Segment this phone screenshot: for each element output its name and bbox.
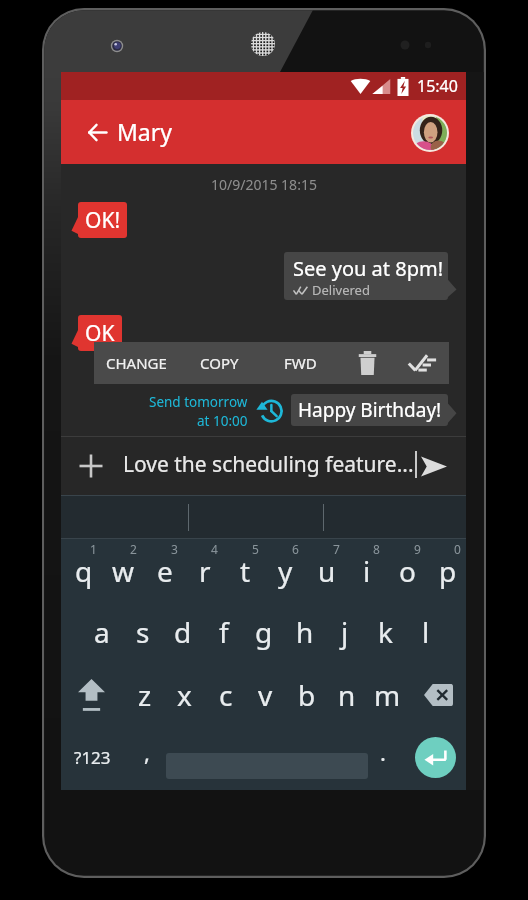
button[interactable]: Done xyxy=(394,342,449,384)
button[interactable]: h xyxy=(284,603,325,661)
button[interactable]: 5 xyxy=(225,536,266,594)
staticText: x xyxy=(177,676,192,714)
button[interactable]: Add attachment xyxy=(65,440,117,492)
button[interactable]: v xyxy=(245,664,286,726)
button[interactable]: . xyxy=(364,728,402,786)
staticText: See you at 8pm! xyxy=(293,255,444,282)
button[interactable]: l xyxy=(405,603,446,661)
staticText: z xyxy=(138,676,152,714)
button[interactable]: k xyxy=(365,603,406,661)
button[interactable]: c xyxy=(205,664,246,726)
staticText: p xyxy=(439,552,457,590)
staticText: y xyxy=(278,552,293,590)
staticText: 6 xyxy=(292,541,299,557)
button[interactable]: 4 xyxy=(184,536,225,594)
button[interactable]: b xyxy=(286,664,327,726)
staticText: a xyxy=(94,613,110,651)
button[interactable]: 0 xyxy=(427,536,468,594)
button[interactable]: j xyxy=(324,603,365,661)
staticText: 1 xyxy=(90,541,97,557)
staticText: Mary xyxy=(117,116,172,147)
button[interactable]: Back xyxy=(70,100,124,164)
button[interactable]: OK xyxy=(78,315,122,351)
button[interactable]: a xyxy=(81,603,122,661)
staticText: b xyxy=(298,676,316,714)
staticText: o xyxy=(399,552,416,590)
staticText: 8 xyxy=(373,541,380,557)
button[interactable]: m xyxy=(367,664,408,726)
button[interactable]: f xyxy=(203,603,244,661)
button[interactable]: , xyxy=(127,728,167,786)
button[interactable]: 9 xyxy=(387,536,428,594)
staticText: s xyxy=(136,613,150,651)
staticText: 4 xyxy=(211,541,218,557)
staticText: CHANGE xyxy=(106,353,167,373)
staticText: 15:40 xyxy=(417,75,458,97)
staticText: g xyxy=(255,613,273,651)
staticText: ?123 xyxy=(74,746,111,769)
button[interactable]: ?123 xyxy=(61,728,131,786)
button[interactable]: See you at 8pm! xyxy=(284,252,448,300)
button[interactable]: Enter xyxy=(415,737,456,778)
button[interactable]: OK! xyxy=(78,202,127,238)
staticText: c xyxy=(219,676,233,714)
button[interactable]: Contact photo xyxy=(411,114,449,152)
button[interactable]: FWD xyxy=(260,342,340,384)
staticText: 0 xyxy=(454,541,461,557)
button[interactable]: Shift xyxy=(65,664,117,726)
button[interactable]: Backspace xyxy=(412,664,464,726)
staticText: e xyxy=(157,552,173,590)
staticText: q xyxy=(75,552,93,590)
staticText: OK! xyxy=(85,206,121,235)
button[interactable]: Send xyxy=(408,440,460,492)
staticText: m xyxy=(374,676,401,714)
staticText: 5 xyxy=(252,541,259,557)
staticText: l xyxy=(422,613,430,651)
staticText: OK xyxy=(85,319,115,348)
button[interactable]: 8 xyxy=(346,536,387,594)
button[interactable]: x xyxy=(164,664,205,726)
staticText: FWD xyxy=(284,353,317,373)
staticText: n xyxy=(338,676,356,714)
button[interactable]: 1 xyxy=(63,536,104,594)
staticText: t xyxy=(240,552,251,590)
staticText: at 10:00 xyxy=(197,412,248,430)
button[interactable]: 3 xyxy=(144,536,185,594)
button[interactable]: z xyxy=(124,664,165,726)
staticText: r xyxy=(199,552,211,590)
staticText: w xyxy=(112,552,135,590)
staticText: 2 xyxy=(130,541,137,557)
button[interactable]: Happy Birthday! xyxy=(291,394,448,426)
staticText: Love the scheduling feature... xyxy=(123,450,414,479)
button[interactable]: COPY xyxy=(178,342,260,384)
button[interactable]: 2 xyxy=(103,536,144,594)
staticText: Happy Birthday! xyxy=(298,397,442,423)
button[interactable]: s xyxy=(122,603,163,661)
staticText: v xyxy=(258,676,273,714)
staticText: u xyxy=(318,552,336,590)
staticText: Send tomorrow xyxy=(149,393,248,411)
staticText: . xyxy=(380,737,386,767)
button[interactable]: n xyxy=(326,664,367,726)
staticText: 9 xyxy=(414,541,421,557)
button[interactable]: CHANGE xyxy=(94,342,178,384)
staticText: , xyxy=(144,737,150,767)
staticText: j xyxy=(341,613,349,651)
button[interactable]: 6 xyxy=(265,536,306,594)
button[interactable]: Delete xyxy=(340,342,394,384)
staticText: 10/9/2015 18:15 xyxy=(211,175,317,194)
staticText: Delivered xyxy=(312,281,370,299)
button[interactable]: g xyxy=(243,603,284,661)
staticText: COPY xyxy=(200,353,239,373)
staticText: k xyxy=(378,613,393,651)
staticText: f xyxy=(219,613,229,651)
staticText: d xyxy=(174,613,192,651)
button[interactable]: 7 xyxy=(306,536,347,594)
staticText: 7 xyxy=(333,541,340,557)
staticText: i xyxy=(363,552,371,590)
button[interactable]: Scheduled send xyxy=(254,395,285,426)
button[interactable]: d xyxy=(162,603,203,661)
staticText: 3 xyxy=(171,541,178,557)
staticText: h xyxy=(296,613,314,651)
